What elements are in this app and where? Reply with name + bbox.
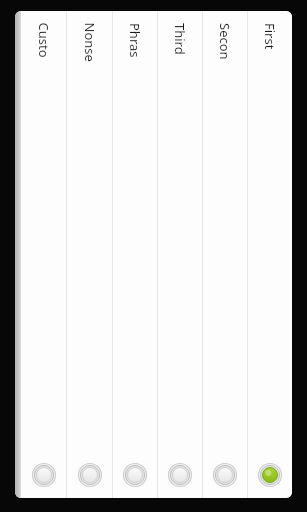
button[interactable]: Phrase <box>113 11 157 498</box>
button[interactable]: Custom <box>21 11 66 498</box>
button[interactable]: Third 100 <box>158 11 202 498</box>
button[interactable]: Nonsense <box>67 11 112 498</box>
staticText: Third 100 <box>171 23 189 63</box>
button[interactable]: First 100 <box>248 11 292 498</box>
button[interactable]: Select First 100 <box>253 458 287 492</box>
staticText: First 100 <box>261 23 279 63</box>
button[interactable]: Select Phrase <box>118 458 152 492</box>
staticText: Nonsense <box>80 22 98 63</box>
button[interactable]: Previous list <box>15 11 21 498</box>
button[interactable]: Second 100 <box>203 11 247 498</box>
staticText: Phrase <box>126 23 144 63</box>
button[interactable]: Select Custom <box>27 458 61 492</box>
staticText: Custom <box>34 22 52 63</box>
staticText: Second 100 <box>216 23 234 63</box>
button[interactable]: Select Second 100 <box>208 458 242 492</box>
button[interactable]: Select Third 100 <box>163 458 197 492</box>
button[interactable]: Select Nonsense <box>73 458 107 492</box>
